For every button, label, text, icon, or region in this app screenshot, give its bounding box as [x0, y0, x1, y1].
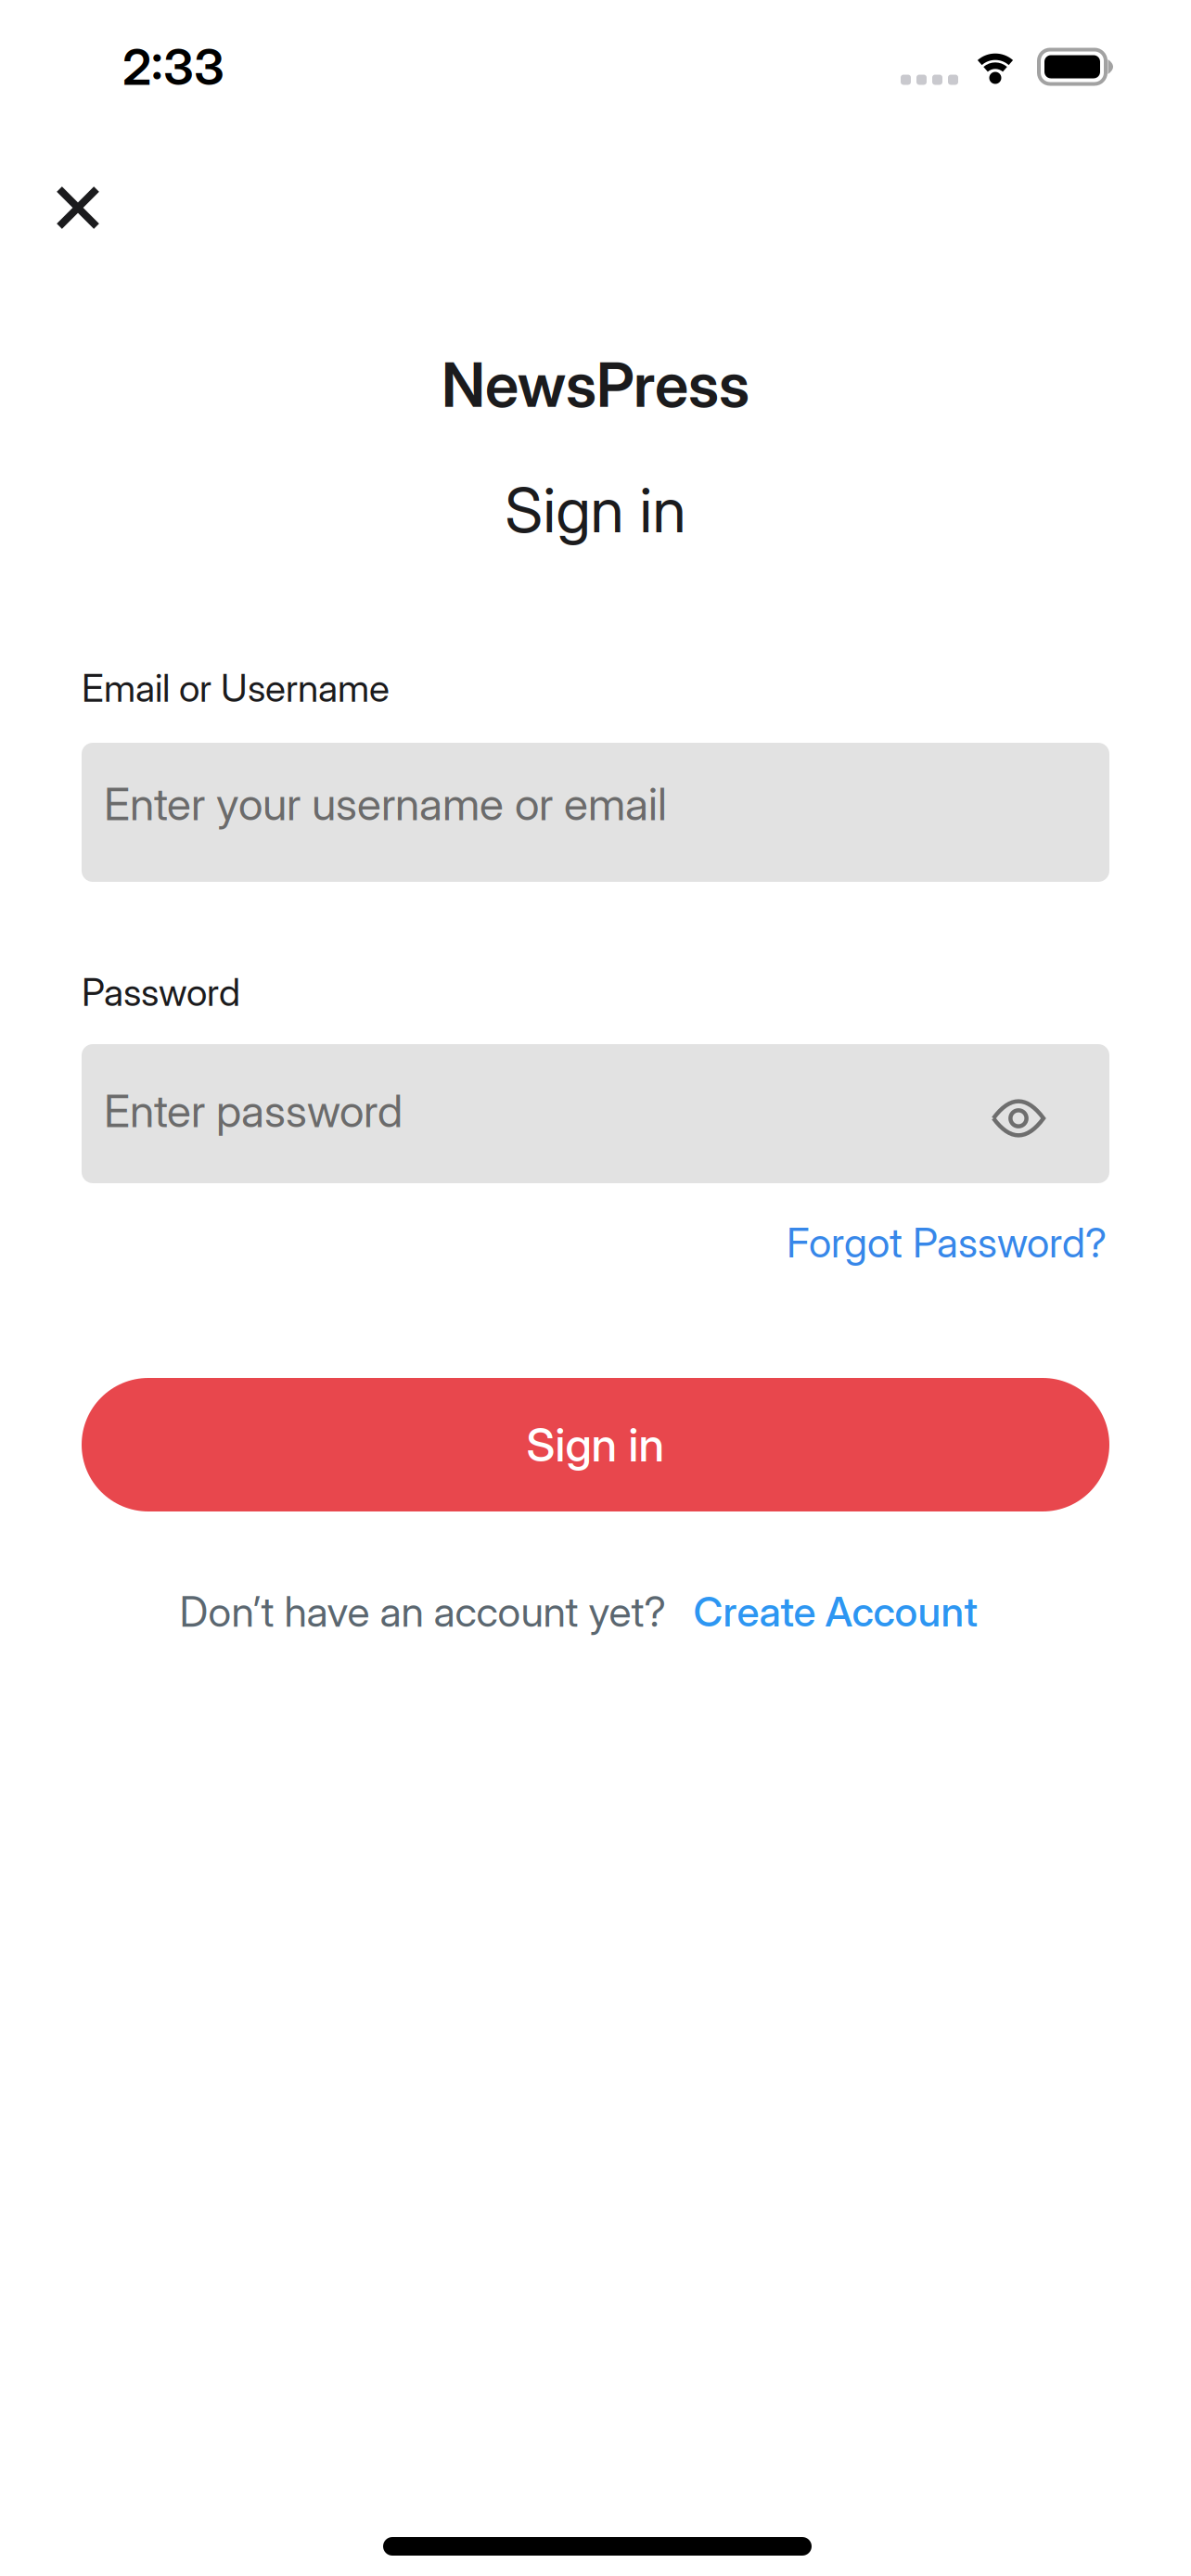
- button[interactable]: Create Account: [693, 1587, 978, 1636]
- button[interactable]: Forgot Password?: [787, 1218, 1107, 1267]
- button[interactable]: Sign in: [82, 1378, 1109, 1511]
- staticText: Sign in: [526, 1417, 665, 1472]
- staticText: Sign in: [505, 473, 686, 547]
- staticText: Enter your username or email: [104, 777, 667, 831]
- staticText: 2:33: [122, 37, 224, 97]
- staticText: Enter password: [104, 1084, 403, 1138]
- staticText: NewsPress: [442, 348, 749, 421]
- staticText: Don’t have an account yet?: [179, 1587, 666, 1637]
- button[interactable]: Show password: [975, 1079, 1062, 1157]
- staticText: Forgot Password?: [787, 1218, 1107, 1267]
- staticText: Create Account: [693, 1587, 978, 1636]
- staticText: Email or Username: [82, 665, 390, 711]
- button[interactable]: Close: [33, 163, 122, 252]
- staticText: Password: [82, 969, 240, 1015]
